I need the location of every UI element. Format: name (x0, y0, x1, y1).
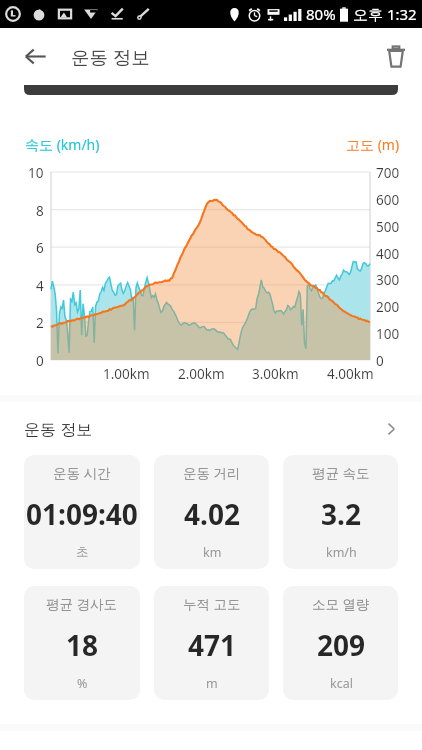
button[interactable]: 평균 속도 (283, 455, 398, 569)
staticText: 0 (376, 352, 384, 370)
staticText: 3.00km (252, 365, 299, 383)
staticText: 2.00km (178, 365, 225, 383)
button[interactable]: 누적 고도 (154, 586, 269, 700)
staticText: 운동 정보 (24, 418, 93, 440)
staticText: 400 (376, 245, 400, 263)
button[interactable]: 평균 경사도 (24, 586, 140, 700)
button[interactable]: 소모 열량 (283, 586, 398, 700)
staticText: 누적 고도 (183, 595, 241, 613)
staticText: 4.00km (327, 365, 374, 383)
staticText: 1.00km (103, 365, 150, 383)
staticText: 고도 (m) (346, 135, 400, 154)
staticText: 10 (28, 164, 44, 182)
staticText: 4 (36, 277, 44, 295)
staticText: 300 (376, 271, 400, 289)
staticText: 200 (376, 298, 400, 316)
staticText: 471 (188, 626, 237, 664)
staticText: 500 (376, 218, 400, 236)
staticText: 209 (317, 626, 366, 664)
staticText: 6 (36, 239, 44, 257)
staticText: 소모 열량 (312, 595, 370, 613)
staticText: km (203, 544, 222, 561)
staticText: % (77, 675, 88, 692)
staticText: 3.2 (321, 495, 361, 533)
staticText: 600 (376, 191, 400, 209)
staticText: 평균 경사도 (46, 595, 118, 613)
staticText: 속도 (km/h) (25, 135, 100, 154)
staticText: m (206, 675, 218, 692)
staticText: kcal (330, 675, 353, 692)
button[interactable]: Delete (370, 28, 422, 84)
staticText: 오후 1:32 (353, 4, 417, 24)
staticText: 운동 시간 (53, 464, 111, 482)
staticText: km/h (326, 544, 357, 561)
staticText: 01:09:40 (26, 495, 138, 533)
button[interactable]: 운동 거리 (154, 455, 269, 569)
staticText: 평균 속도 (312, 464, 370, 482)
staticText: 0 (36, 352, 44, 370)
staticText: 700 (376, 164, 400, 182)
staticText: 100 (376, 325, 400, 343)
button[interactable]: Back (24, 28, 72, 84)
staticText: 18 (66, 626, 99, 664)
staticText: 80% (306, 4, 336, 24)
staticText: 운동 정보 (71, 44, 150, 69)
button[interactable]: 운동 시간 (24, 455, 140, 569)
staticText: 운동 거리 (183, 464, 241, 482)
staticText: 8 (36, 202, 44, 220)
button[interactable]: 운동 정보 (0, 402, 422, 455)
staticText: 초 (76, 544, 89, 560)
staticText: 2 (36, 314, 44, 332)
staticText: 4.02 (184, 495, 240, 533)
